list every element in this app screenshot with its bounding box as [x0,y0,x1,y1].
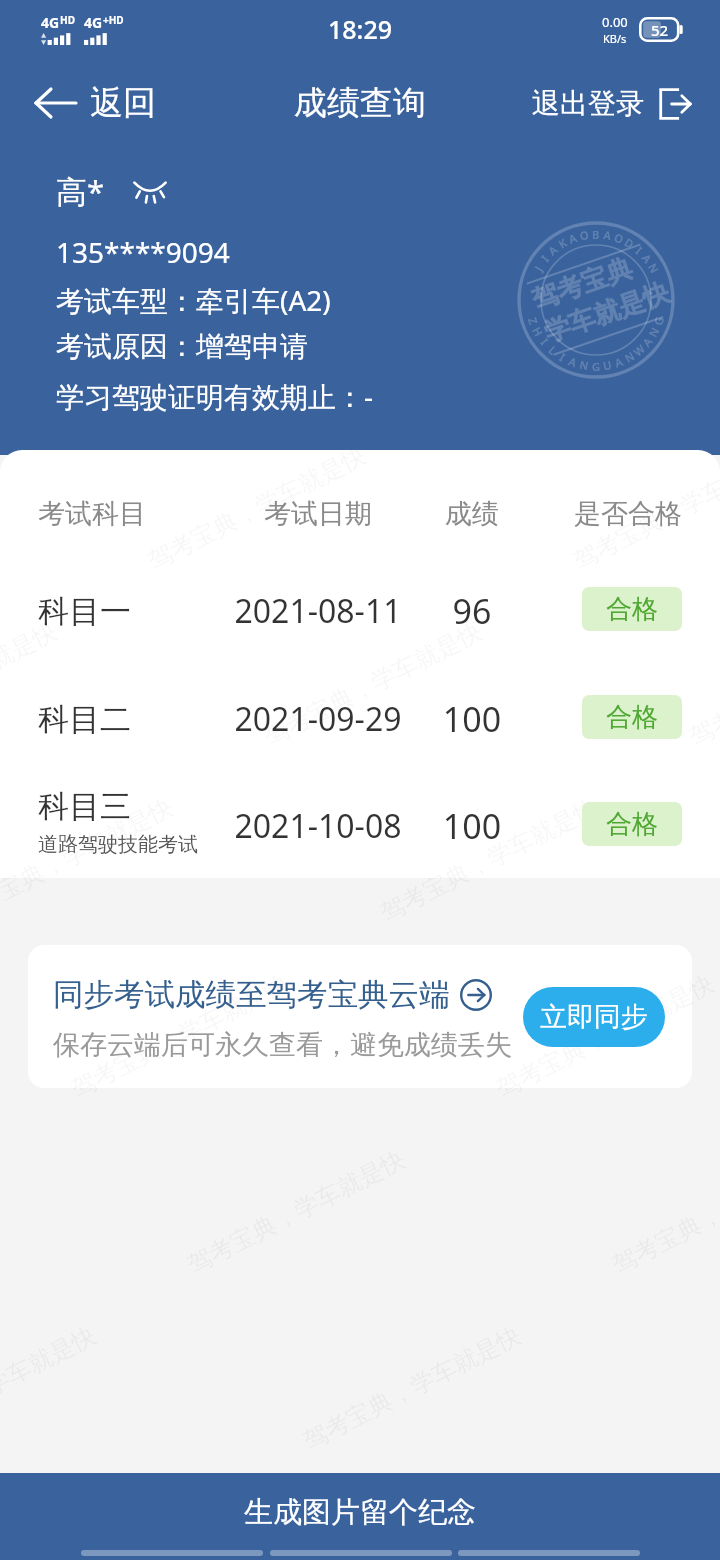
button[interactable]: 同步考试成绩至驾考宝典云端 [28,945,692,1088]
staticText: 合格 [606,593,658,626]
staticText: HD [60,13,75,27]
button[interactable]: Back [28,76,162,130]
staticText: 考试日期 [228,497,408,531]
staticText: 100 [408,803,536,849]
staticText: 生成图片留个纪念 [244,1494,476,1531]
button[interactable]: 科目二 [0,681,720,757]
button[interactable]: 立即同步 [523,987,665,1047]
staticText: 135****9094 [56,233,230,271]
staticText: +HD [103,13,124,27]
staticText: 52 [651,20,669,40]
staticText: 考试原因：增驾申请 [56,329,308,364]
staticText: 0.00 [602,13,628,31]
staticText: 考试科目 [38,497,228,531]
staticText: 合格 [606,808,658,841]
button[interactable]: 生成图片留个纪念 [0,1473,720,1551]
staticText: 4G [41,13,60,32]
staticText: 同步考试成绩至驾考宝典云端 [53,976,450,1014]
staticText: 考试车型：牵引车(A2) [56,281,331,319]
button[interactable]: 退出登录 [528,80,696,127]
staticText: 18:29 [328,12,393,46]
staticText: 是否合格 [536,497,720,531]
staticText: 科目二 [38,700,131,739]
staticText: 成绩 [408,497,536,531]
staticText: 保存云端后可永久查看，避免成绩丢失 [53,1028,512,1062]
staticText: 成绩查询 [294,82,426,124]
staticText: 2021-08-11 [228,589,408,633]
button[interactable]: System navigation [458,1550,640,1556]
staticText: 96 [408,588,536,634]
button[interactable]: System navigation [270,1550,452,1556]
staticText: 2021-09-29 [228,697,408,741]
staticText: 立即同步 [540,1000,648,1034]
staticText: 2021-10-08 [228,804,408,848]
other: Back [34,87,78,119]
staticText: 道路驾驶技能考试 [38,832,198,857]
other: Logout [658,87,692,121]
staticText: KB/s [603,31,627,46]
staticText: 科目三 [38,787,131,826]
staticText: 退出登录 [532,86,644,121]
button[interactable]: 科目三 [0,788,720,864]
staticText: 返回 [90,82,156,124]
staticText: 100 [408,696,536,742]
button[interactable]: 科目一 [0,573,720,649]
staticText: 高* [56,170,105,212]
staticText: 科目一 [38,592,131,631]
button[interactable]: Toggle name visibility [131,174,169,208]
button[interactable]: System navigation [81,1550,263,1556]
staticText: 4G [84,13,103,32]
staticText: 合格 [606,701,658,734]
staticText: 学习驾驶证明有效期止：- [56,377,374,415]
